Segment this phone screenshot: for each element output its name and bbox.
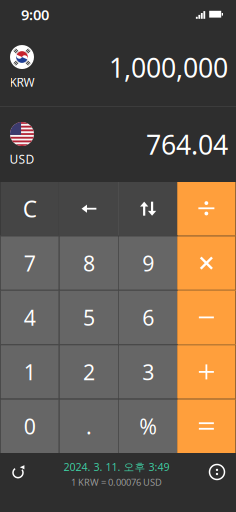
button[interactable]: KRW <box>0 29 236 106</box>
staticText: 764.04 <box>146 127 228 162</box>
staticText: 7 <box>24 249 36 277</box>
staticText: 2024. 3. 11. 오후 3:49 <box>63 460 169 474</box>
staticText: 1,000,000 <box>109 50 228 85</box>
staticText: 8 <box>83 249 95 277</box>
button[interactable]: 4 <box>0 291 59 344</box>
button[interactable]: Operator <box>177 236 235 290</box>
button[interactable]: 8 <box>60 236 118 290</box>
button[interactable]: More options <box>199 454 235 490</box>
button[interactable]: . <box>60 400 118 453</box>
staticText: 4 <box>24 303 36 332</box>
button[interactable]: Backspace <box>60 182 118 235</box>
button[interactable]: Operator <box>177 400 235 453</box>
button[interactable]: Refresh rates <box>0 454 36 490</box>
button[interactable]: 5 <box>60 291 118 344</box>
button[interactable]: USD <box>0 107 236 182</box>
button[interactable]: 0 <box>0 400 59 453</box>
button[interactable]: 2 <box>60 345 118 399</box>
button[interactable]: C <box>0 182 59 235</box>
staticText: 9:00 <box>21 5 49 24</box>
button[interactable]: Operator <box>177 345 235 399</box>
staticText: 0 <box>24 412 36 440</box>
staticText: 9 <box>142 249 154 277</box>
staticText: % <box>139 412 157 440</box>
staticText: KRW <box>9 74 34 90</box>
staticText: C <box>23 194 37 224</box>
staticText: 6 <box>142 303 154 332</box>
button[interactable]: Divide <box>177 182 235 235</box>
button[interactable]: 7 <box>0 236 59 290</box>
button[interactable]: 1 <box>0 345 59 399</box>
staticText: 1 KRW = 0.00076 USD <box>71 476 162 488</box>
staticText: 5 <box>83 303 95 332</box>
button[interactable]: 3 <box>119 345 177 399</box>
button[interactable]: Operator <box>177 291 235 344</box>
staticText: 2 <box>83 358 95 386</box>
staticText: 1 <box>24 358 36 386</box>
button[interactable]: % <box>119 400 177 453</box>
button[interactable]: 6 <box>119 291 177 344</box>
button[interactable]: 9 <box>119 236 177 290</box>
staticText: . <box>86 412 92 440</box>
staticText: USD <box>9 151 34 167</box>
button[interactable]: Swap currencies <box>119 182 177 235</box>
staticText: 3 <box>142 358 154 386</box>
